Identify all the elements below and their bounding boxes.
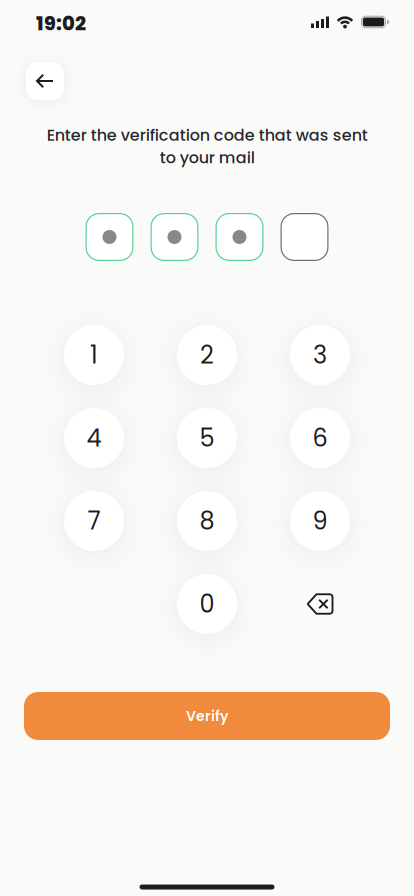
button[interactable]: 8 (177, 491, 237, 551)
staticText: Enter the verification code that was sen… (46, 124, 367, 169)
staticText: 7 (87, 504, 100, 538)
button[interactable]: 5 (177, 408, 237, 468)
staticText: Verify (186, 706, 228, 726)
button[interactable]: 3 (290, 325, 350, 385)
button[interactable]: 6 (290, 408, 350, 468)
button[interactable]: Back (26, 62, 64, 100)
button[interactable]: 0 (177, 574, 237, 634)
staticText: 5 (199, 421, 214, 455)
button[interactable]: 9 (290, 491, 350, 551)
staticText: 6 (312, 421, 327, 455)
staticText: 0 (199, 587, 214, 621)
button[interactable]: 7 (64, 491, 124, 551)
button[interactable]: 2 (177, 325, 237, 385)
staticText: 9 (312, 504, 327, 538)
staticText: 4 (86, 421, 101, 455)
staticText: 1 (90, 338, 98, 372)
staticText: 19:02 (36, 10, 86, 37)
button[interactable]: Verify (24, 692, 390, 740)
staticText: 3 (313, 338, 327, 372)
staticText: 8 (199, 504, 214, 538)
staticText: 2 (200, 338, 214, 372)
button[interactable]: Delete (290, 574, 350, 634)
button[interactable]: 4 (64, 408, 124, 468)
button[interactable]: 1 (64, 325, 124, 385)
